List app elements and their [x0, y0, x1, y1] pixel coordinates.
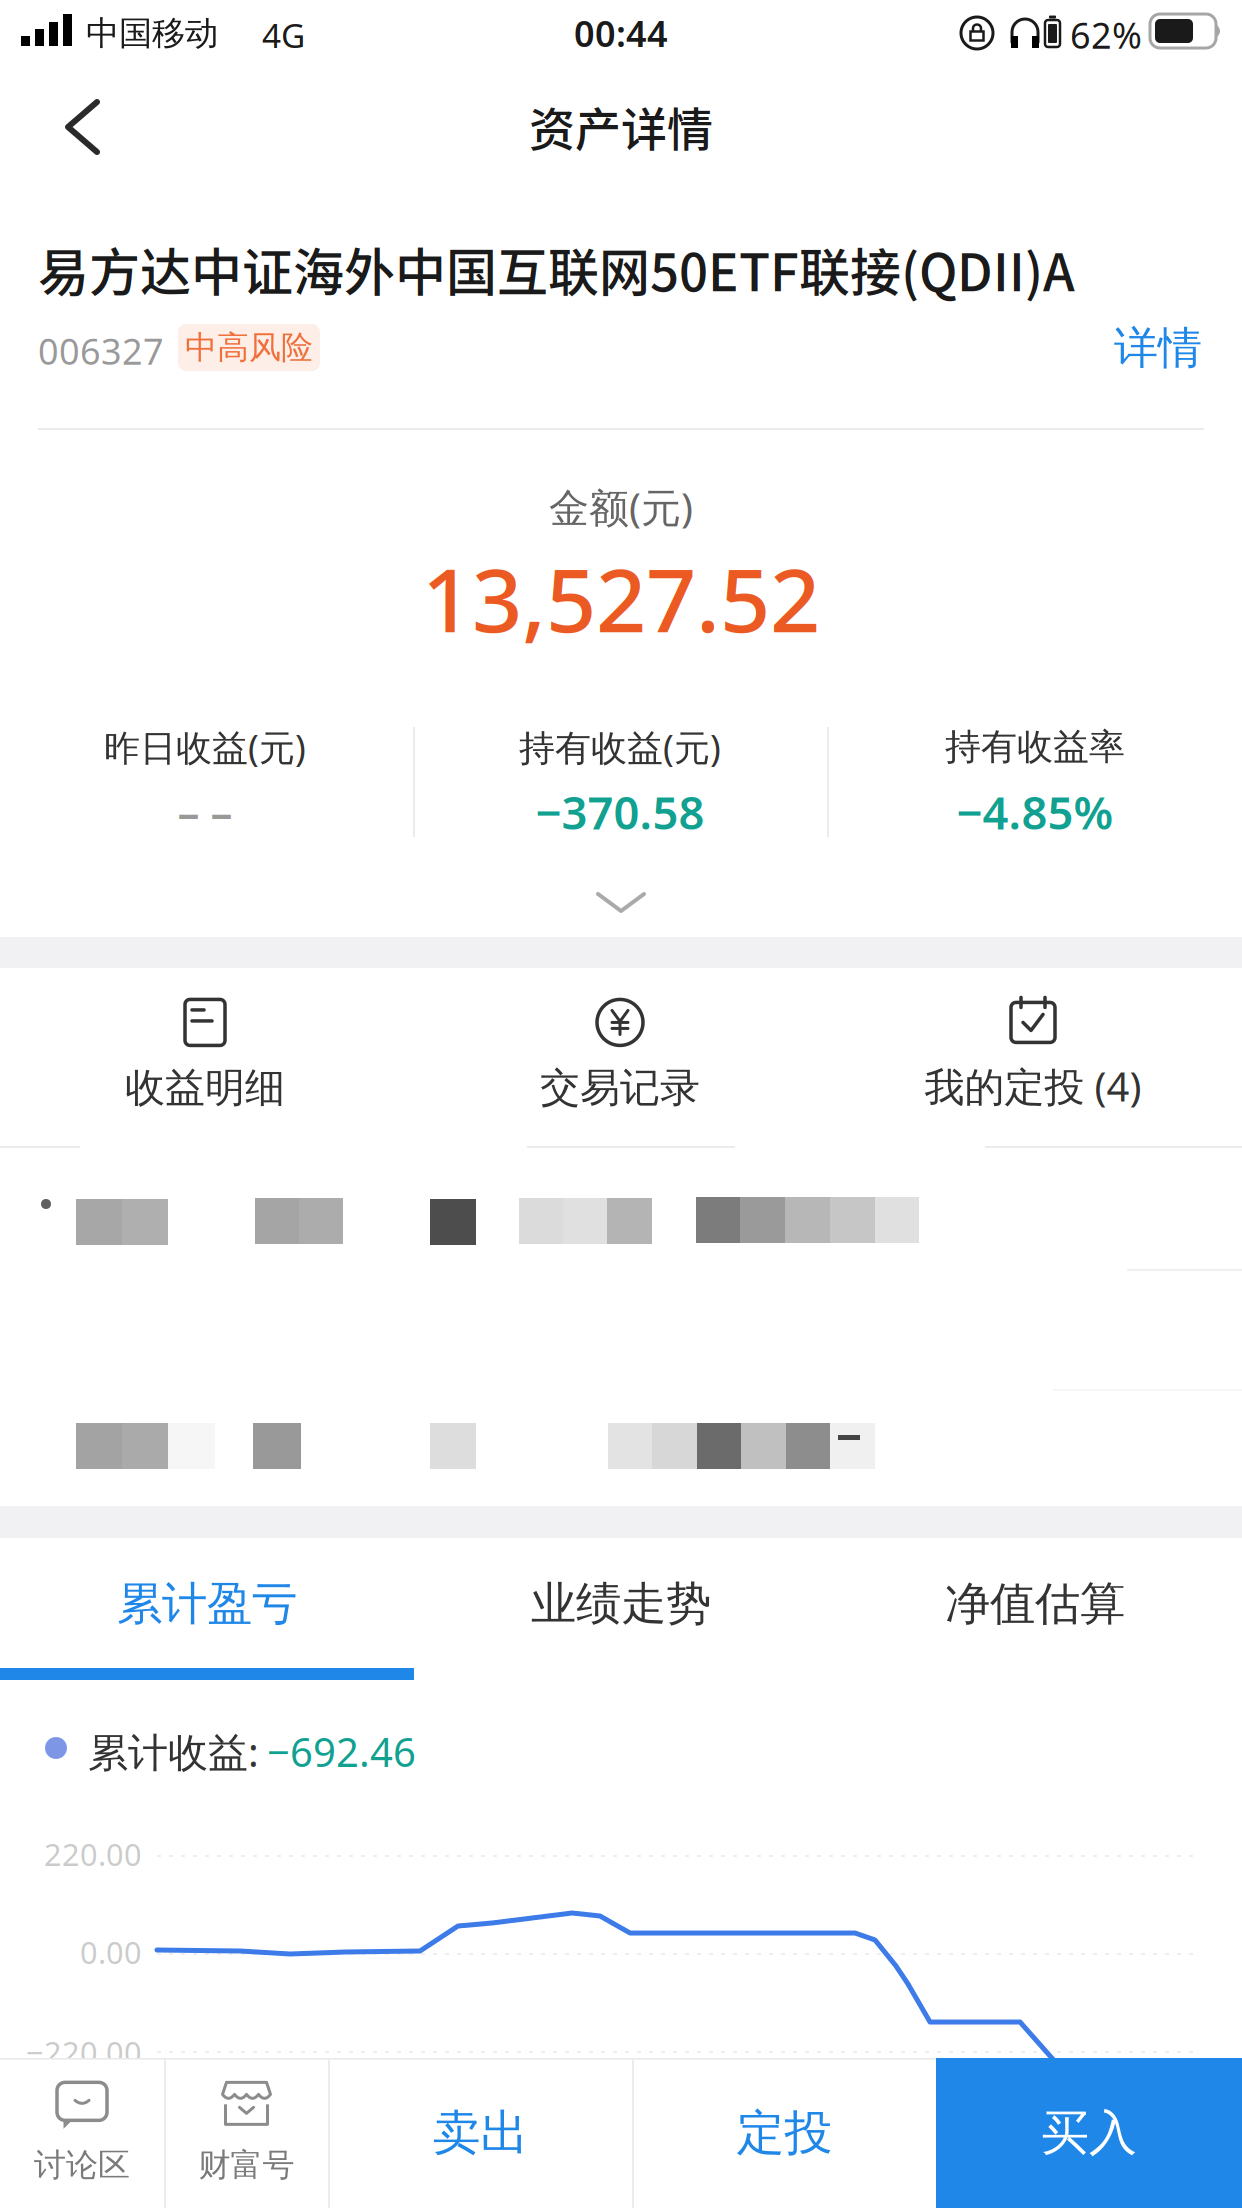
staticText: 中国移动	[86, 13, 218, 54]
staticText: −220.00	[26, 2032, 142, 2072]
staticText: 买入	[1041, 2103, 1137, 2162]
staticText: 财富号	[198, 2145, 294, 2185]
button[interactable]: 卖出	[329, 2058, 632, 2208]
button[interactable]	[576, 881, 666, 925]
button[interactable]: 收益明细	[40, 976, 370, 1136]
staticText: 易方达中证海外中国互联网50ETF联接(QDII)A	[38, 232, 1075, 306]
staticText: 中高风险	[185, 328, 313, 367]
staticText: 卖出	[432, 2103, 528, 2162]
staticText: 00:44	[574, 9, 668, 57]
staticText: 持有收益率	[945, 725, 1125, 769]
staticText: 定投	[736, 2103, 832, 2162]
button[interactable]: 累计盈亏	[0, 1539, 414, 1669]
button[interactable]: 定投	[633, 2058, 936, 2208]
staticText: 详情	[1114, 321, 1202, 375]
staticText: −692.46	[267, 1725, 416, 1778]
button[interactable]: 讨论区	[0, 2058, 164, 2208]
staticText: −370.58	[535, 782, 704, 842]
staticText: −4.85%	[956, 782, 1113, 842]
button[interactable]: 详情	[1098, 318, 1218, 378]
staticText: 0.00	[80, 1932, 142, 1972]
button[interactable]: 财富号	[165, 2058, 328, 2208]
staticText: 006327	[38, 327, 164, 375]
staticText: 我的定投 (4)	[924, 1059, 1141, 1112]
staticText: 净值估算	[945, 1576, 1125, 1632]
staticText: 累计收益:	[88, 1725, 259, 1778]
staticText: 讨论区	[34, 2145, 130, 2185]
staticText: 业绩走势	[531, 1576, 711, 1632]
staticText: 4G	[262, 13, 305, 57]
staticText: 220.00	[44, 1834, 142, 1874]
staticText: 累计盈亏	[117, 1576, 297, 1632]
staticText: 昨日收益(元)	[104, 723, 306, 771]
staticText: 62%	[1070, 11, 1142, 59]
button[interactable]: 净值估算	[828, 1539, 1242, 1669]
button[interactable]: 买入	[936, 2058, 1242, 2208]
button[interactable]: 业绩走势	[414, 1539, 828, 1669]
staticText: 交易记录	[540, 1063, 700, 1112]
button[interactable]	[43, 92, 123, 162]
staticText: 收益明细	[125, 1063, 285, 1112]
staticText: – –	[177, 783, 232, 841]
button[interactable]: 我的定投 (4)	[853, 974, 1213, 1134]
staticText: 资产详情	[529, 93, 713, 159]
staticText: 持有收益(元)	[519, 723, 721, 771]
staticText: 金额(元)	[549, 480, 693, 533]
staticText: 13,527.52	[422, 540, 820, 656]
button[interactable]: 交易记录	[455, 976, 785, 1136]
